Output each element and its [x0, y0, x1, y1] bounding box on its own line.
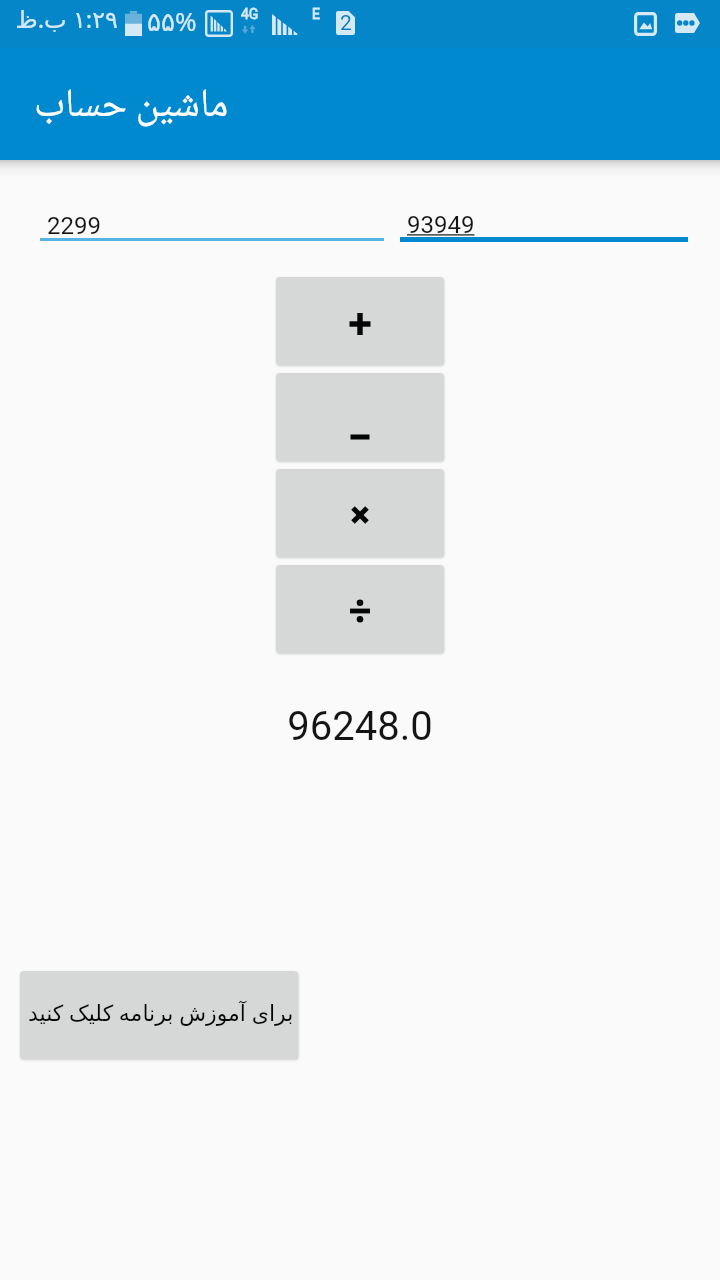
staticText: برای آموزش برنامه کلیک کنید: [28, 997, 294, 1027]
button[interactable]: Add: [276, 277, 444, 365]
other: Screenshot: [634, 12, 657, 36]
staticText: ۵۵%: [147, 3, 197, 38]
other: More options: [675, 13, 700, 33]
staticText: E: [312, 6, 320, 22]
staticText: 93949: [407, 211, 475, 239]
button[interactable]: Multiply: [276, 469, 444, 557]
button[interactable]: Divide: [276, 565, 444, 653]
staticText: 96248.0: [0, 703, 720, 750]
button[interactable]: Subtract: [276, 373, 444, 461]
staticText: 4G: [241, 6, 259, 22]
staticText: 2299: [47, 212, 101, 240]
staticText: ماشین حساب: [34, 73, 229, 141]
staticText: 2: [340, 11, 352, 35]
button[interactable]: برای آموزش برنامه کلیک کنید: [20, 971, 298, 1059]
staticText: ۱:۲۹ ب.ظ: [9, 2, 118, 35]
